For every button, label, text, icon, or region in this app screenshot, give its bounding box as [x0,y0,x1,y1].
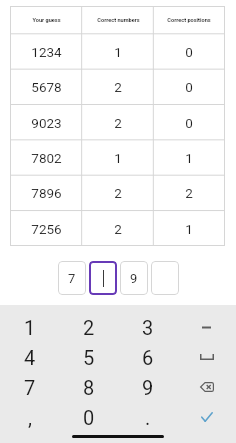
staticText: 2 [114,185,122,201]
button[interactable]: 7 [0,372,59,402]
button[interactable]: , [0,402,59,432]
staticText: , [28,406,32,429]
staticText: 1 [185,221,193,237]
staticText: 7896 [31,185,62,201]
staticText: 4 [24,346,36,369]
staticText: Correct numbers [97,17,140,24]
button[interactable]: check [177,402,236,432]
button[interactable]: 4 [0,342,59,372]
staticText: Correct positions [167,17,211,24]
button[interactable]: 8 [59,372,118,402]
staticText: 9 [142,376,154,399]
button[interactable]: 0 [59,402,118,432]
button[interactable]: 9 [118,372,177,402]
staticText: 5678 [31,79,62,95]
staticText: 1 [24,316,36,339]
button[interactable]: minus [177,312,236,342]
button[interactable] [89,261,117,295]
staticText: 2 [114,115,122,131]
staticText: 7256 [31,221,62,237]
staticText: 2 [114,79,122,95]
staticText: 7802 [31,150,62,166]
staticText: 6 [142,346,154,369]
button[interactable]: 6 [118,342,177,372]
button[interactable] [151,261,179,295]
button[interactable]: 9 [120,261,148,295]
staticText: 3 [142,316,154,339]
staticText: 0 [185,44,193,60]
staticText: 9023 [31,115,62,131]
button[interactable]: space [177,342,236,372]
staticText: 9 [130,271,138,286]
staticText: 1 [114,44,122,60]
staticText: 2 [114,221,122,237]
staticText: 1 [114,150,122,166]
staticText: 0 [83,406,95,429]
staticText: 1 [185,150,193,166]
button[interactable]: 1 [0,312,59,342]
staticText: 8 [83,376,95,399]
staticText: 7 [24,376,36,399]
staticText: 2 [185,185,193,201]
button[interactable]: 7 [58,261,86,295]
button[interactable]: 2 [59,312,118,342]
staticText: 0 [185,79,193,95]
staticText: 5 [83,346,95,369]
button[interactable]: 3 [118,312,177,342]
button[interactable]: backspace [177,372,236,402]
staticText: . [145,406,151,429]
staticText: 1234 [31,44,62,60]
staticText: Your guess [32,17,61,24]
button[interactable]: . [118,402,177,432]
staticText: 2 [83,316,95,339]
staticText: 7 [68,271,76,286]
staticText: 0 [185,115,193,131]
button[interactable]: 5 [59,342,118,372]
